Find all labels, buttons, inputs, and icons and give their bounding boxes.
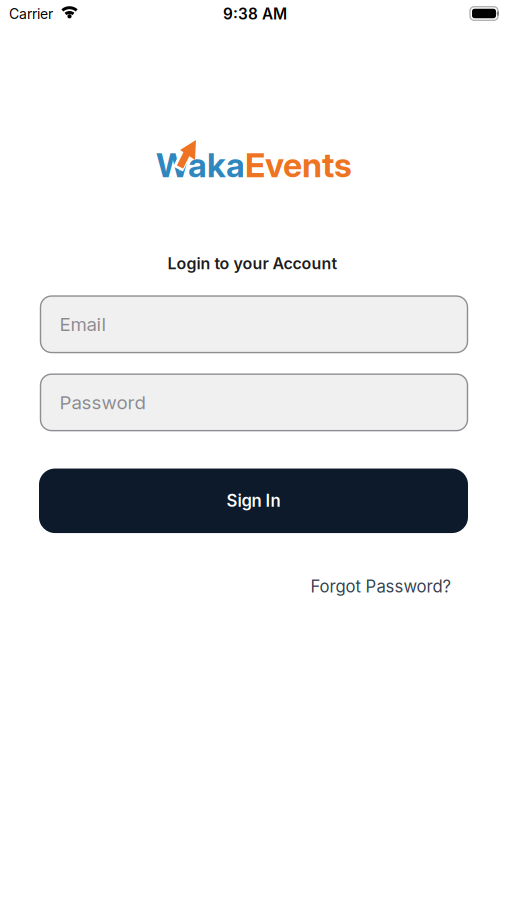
staticText: Events [245,145,352,185]
staticText: Login to your Account [167,254,337,273]
staticText: Forgot Password? [310,576,451,597]
staticText: Sign In [226,491,280,511]
staticText: Waka [156,145,245,185]
staticText: Carrier [9,5,53,22]
staticText: 9:38 AM [223,5,287,23]
staticText: Email [59,313,106,336]
staticText: Password [59,391,145,414]
